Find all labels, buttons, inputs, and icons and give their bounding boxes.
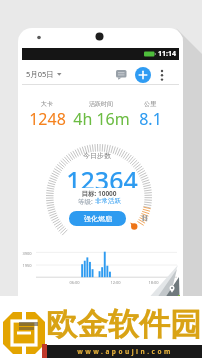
staticText: 公里 (144, 100, 156, 108)
staticText: 3900 (22, 251, 32, 256)
staticText: 4h 16m (73, 108, 129, 126)
staticText: 12:00 (110, 280, 121, 285)
button[interactable] (116, 70, 127, 80)
staticText: 今日步数 (83, 151, 111, 160)
staticText: 18:00 (148, 280, 159, 285)
button[interactable]: 5月05日 (26, 66, 62, 82)
staticText: 06:00 (69, 280, 80, 285)
staticText: 5月05日 (26, 69, 54, 79)
staticText: 大卡 (41, 100, 53, 108)
button[interactable]: 8.1 (124, 108, 176, 126)
staticText: 欧金软件园 (46, 305, 201, 344)
button[interactable] (148, 263, 182, 297)
button[interactable] (142, 215, 148, 222)
staticText: 非常活跃 (95, 197, 121, 205)
button[interactable]: 4h 16m (73, 108, 129, 126)
staticText: 强化燃脂 (84, 214, 112, 223)
staticText: www.apoujin.com (77, 347, 173, 356)
staticText: 11:14 (158, 49, 176, 59)
staticText: 目标: 10000 (81, 189, 117, 197)
button[interactable]: 1248 (21, 108, 73, 126)
staticText: 1950 (22, 263, 32, 268)
staticText: 8.1 (139, 108, 162, 126)
staticText: 1248 (29, 108, 66, 126)
button[interactable]: 强化燃脂 (69, 211, 126, 226)
button[interactable] (135, 67, 151, 83)
button[interactable] (159, 68, 165, 82)
staticText: 12364 (66, 163, 138, 188)
staticText: 活跃时间 (89, 100, 113, 108)
staticText: 等级: (78, 197, 95, 205)
